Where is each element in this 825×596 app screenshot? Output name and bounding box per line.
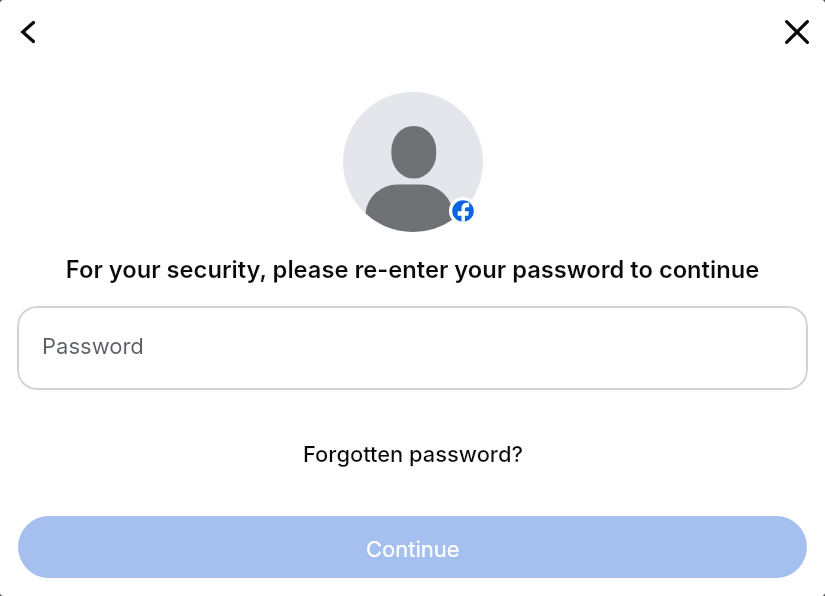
- button[interactable]: Continue: [18, 516, 807, 578]
- button[interactable]: Forgotten password?: [293, 435, 533, 473]
- staticText: Forgotten password?: [303, 441, 523, 467]
- staticText: For your security, please re-enter your …: [14, 255, 811, 284]
- staticText: Continue: [366, 536, 460, 563]
- button[interactable]: Close: [774, 9, 819, 54]
- button[interactable]: Back: [5, 9, 50, 54]
- staticText: Password: [42, 333, 144, 360]
- button[interactable]: Password: [17, 306, 808, 390]
